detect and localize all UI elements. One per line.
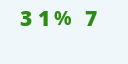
staticText: 7: [85, 4, 98, 33]
staticText: 3: [20, 4, 33, 33]
staticText: %: [54, 5, 72, 31]
staticText: 1: [38, 4, 51, 33]
